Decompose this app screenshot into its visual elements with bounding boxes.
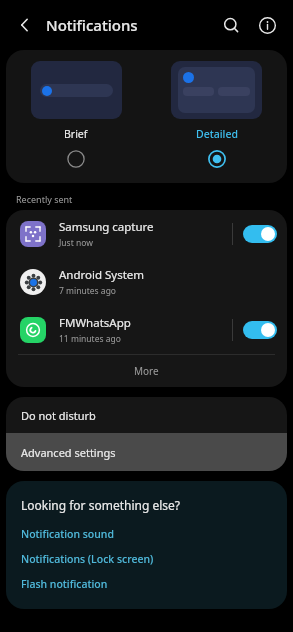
button[interactable]: Samsung capture bbox=[6, 210, 287, 258]
staticText: Samsung capture bbox=[59, 219, 154, 235]
staticText: Notifications (Lock screen) bbox=[21, 552, 154, 566]
staticText: Advanced settings bbox=[21, 445, 116, 460]
button[interactable]: Search bbox=[213, 7, 249, 43]
staticText: Do not disturb bbox=[21, 408, 96, 423]
button[interactable]: Back bbox=[8, 8, 42, 42]
button[interactable]: Toggle FMWhatsApp bbox=[243, 321, 277, 339]
button[interactable]: Information bbox=[249, 7, 285, 43]
staticText: Flash notification bbox=[21, 577, 108, 591]
staticText: Looking for something else? bbox=[21, 497, 181, 513]
button[interactable]: Flash notification bbox=[21, 577, 108, 591]
button[interactable]: Brief bbox=[6, 50, 146, 183]
staticText: 11 minutes ago bbox=[59, 333, 121, 345]
staticText: Recently sent bbox=[16, 193, 73, 205]
button[interactable]: Detailed bbox=[146, 50, 287, 183]
button[interactable]: FMWhatsApp bbox=[6, 306, 287, 354]
button[interactable]: More bbox=[6, 355, 287, 387]
staticText: Android System bbox=[59, 267, 145, 283]
staticText: Just now bbox=[59, 237, 93, 249]
button[interactable]: Advanced settings bbox=[6, 433, 287, 471]
staticText: More bbox=[134, 364, 159, 378]
staticText: Notification sound bbox=[21, 527, 114, 541]
button[interactable]: Do not disturb bbox=[6, 397, 287, 433]
staticText: FMWhatsApp bbox=[59, 315, 131, 331]
staticText: Detailed bbox=[196, 127, 238, 141]
button[interactable]: Android System bbox=[6, 258, 287, 306]
button[interactable]: Notification sound bbox=[21, 527, 114, 541]
staticText: 7 minutes ago bbox=[59, 285, 117, 297]
staticText: Brief bbox=[64, 127, 88, 141]
button[interactable]: Toggle Samsung capture bbox=[243, 225, 277, 243]
staticText: Notifications bbox=[46, 15, 138, 35]
button[interactable]: Notifications (Lock screen) bbox=[21, 552, 154, 566]
